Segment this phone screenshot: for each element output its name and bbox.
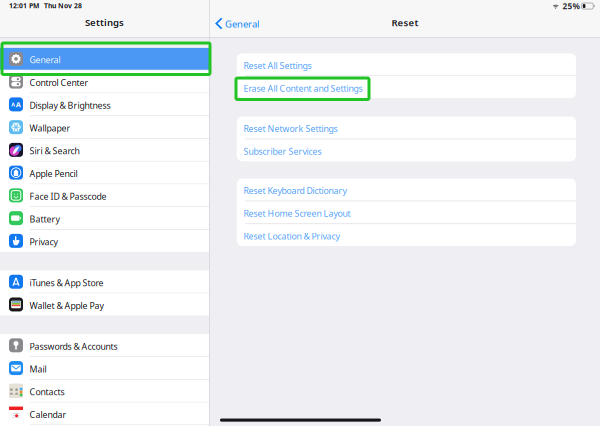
button[interactable]: Privacy (0, 230, 209, 252)
staticText: Passwords & Accounts (29, 340, 117, 352)
staticText: Reset Location & Privacy (244, 230, 340, 242)
staticText: A (16, 99, 21, 109)
button[interactable]: Control Center (0, 71, 209, 93)
staticText: Wallet & Apple Pay (29, 299, 103, 311)
staticText: Control Center (29, 77, 88, 89)
button[interactable]: Reset Network Settings (237, 117, 576, 138)
button[interactable]: Battery (0, 207, 209, 229)
staticText: Reset All Settings (244, 59, 312, 71)
staticText: 12:01 PM (9, 1, 39, 10)
staticText: Reset Keyboard Dictionary (244, 185, 347, 197)
staticText: Display & Brightness (29, 99, 110, 111)
button[interactable]: Erase All Content and Settings (237, 76, 576, 98)
button[interactable]: Siri & Search (0, 139, 209, 161)
staticText: Settings (85, 16, 124, 29)
button[interactable]: Contacts (0, 380, 209, 402)
button[interactable]: Wallpaper (0, 116, 209, 138)
staticText: Apple Pencil (29, 168, 77, 180)
staticText: Battery (29, 213, 59, 225)
button[interactable]: General (210, 15, 265, 31)
button[interactable]: iTunes & App Store (0, 271, 209, 293)
staticText: 25% (562, 0, 579, 12)
staticText: Reset Network Settings (244, 123, 338, 135)
staticText: Thu Nov 28 (44, 1, 82, 10)
staticText: Siri & Search (29, 145, 79, 157)
staticText: Subscriber Services (244, 145, 322, 157)
button[interactable]: A (0, 93, 209, 115)
staticText: Wallpaper (29, 122, 70, 134)
button[interactable]: Reset Location & Privacy (237, 224, 576, 246)
button[interactable]: Reset All Settings (237, 53, 576, 75)
button[interactable]: Calendar (0, 403, 209, 424)
staticText: General (29, 54, 60, 66)
staticText: Face ID & Passcode (29, 190, 106, 202)
staticText: General (225, 17, 259, 30)
staticText: Reset Home Screen Layout (244, 207, 351, 219)
button[interactable]: Reset Home Screen Layout (237, 201, 576, 223)
staticText: Privacy (29, 236, 57, 248)
button[interactable]: General (0, 48, 209, 70)
button[interactable]: Reset Keyboard Dictionary (237, 179, 576, 200)
button[interactable]: Mail (0, 357, 209, 379)
staticText: Mail (29, 363, 46, 375)
button[interactable]: Subscriber Services (237, 139, 576, 161)
staticText: Reset (391, 16, 418, 29)
staticText: Contacts (29, 386, 64, 398)
staticText: Calendar (29, 409, 66, 421)
staticText: Erase All Content and Settings (244, 82, 363, 94)
button[interactable]: Face ID & Passcode (0, 184, 209, 206)
button[interactable]: Wallet & Apple Pay (0, 293, 209, 315)
staticText: iTunes & App Store (29, 277, 103, 289)
button[interactable]: Passwords & Accounts (0, 334, 209, 356)
button[interactable]: Apple Pencil (0, 162, 209, 184)
staticText: A (11, 101, 15, 108)
